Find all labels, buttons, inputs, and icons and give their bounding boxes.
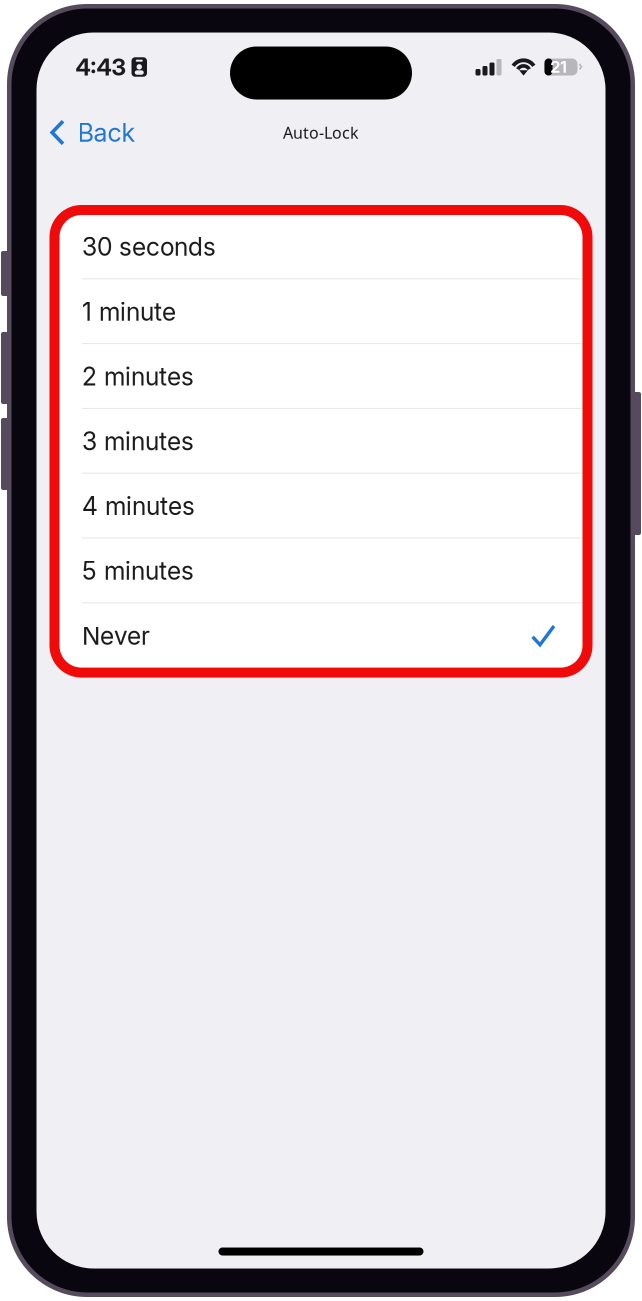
staticText: 4 minutes	[82, 491, 195, 521]
staticText: 2 minutes	[82, 362, 194, 391]
staticText: 30 seconds	[82, 232, 216, 262]
staticText: 5 minutes	[82, 556, 194, 586]
button[interactable]: Back	[36, 113, 145, 151]
staticText: Auto-Lock	[283, 122, 359, 143]
button[interactable]: 30 seconds	[54, 214, 588, 279]
staticText: 3 minutes	[82, 426, 194, 456]
button[interactable]: Never	[54, 603, 588, 668]
staticText: 21	[550, 57, 566, 77]
staticText: Never	[82, 621, 150, 651]
button[interactable]: 5 minutes	[54, 538, 588, 603]
button[interactable]: 1 minute	[54, 279, 588, 344]
staticText: 4:43	[75, 53, 125, 81]
button[interactable]: 3 minutes	[54, 409, 588, 474]
staticText: Back	[77, 117, 135, 148]
button[interactable]: 2 minutes	[54, 344, 588, 409]
button[interactable]: 4 minutes	[54, 474, 588, 538]
staticText: 1 minute	[82, 297, 176, 327]
